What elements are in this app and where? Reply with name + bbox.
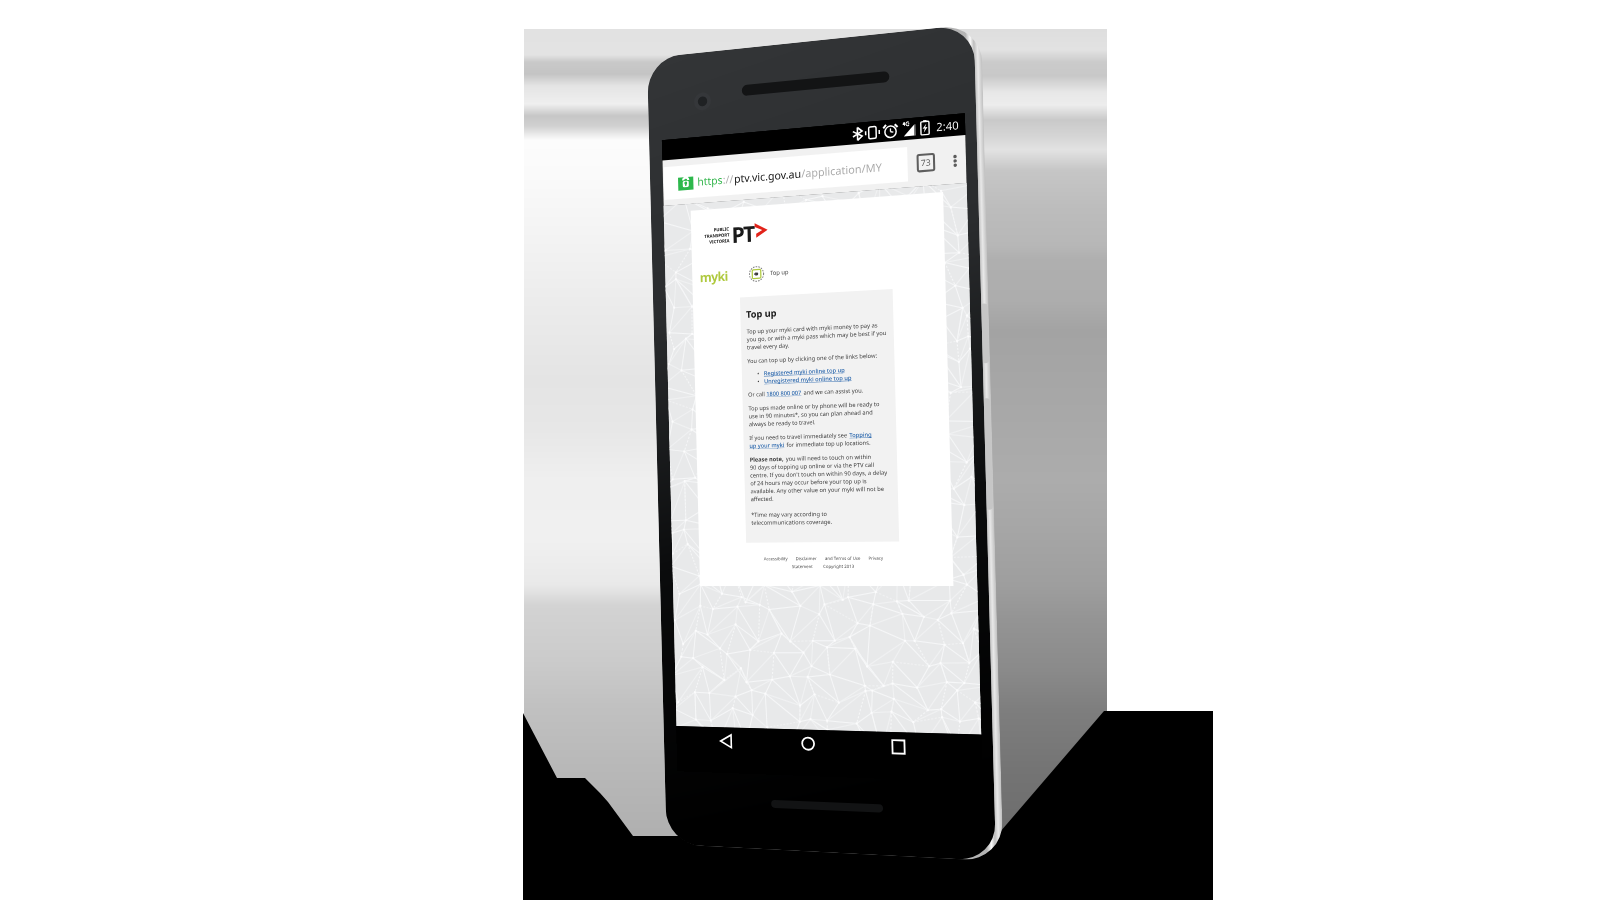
staticText: 73 bbox=[921, 156, 931, 169]
button[interactable]: https bbox=[663, 147, 908, 200]
button[interactable]: Recents bbox=[886, 732, 911, 757]
staticText: Please note, bbox=[750, 455, 784, 464]
staticText: *Time may vary according to bbox=[751, 510, 828, 519]
staticText: and we can assist you. bbox=[802, 386, 864, 397]
staticText: VICTORIA bbox=[709, 237, 730, 245]
button[interactable]: Registered myki online top up bbox=[764, 366, 846, 377]
staticText: Top up bbox=[770, 268, 789, 277]
button[interactable]: up your myki bbox=[749, 441, 785, 450]
button[interactable]: Topping bbox=[849, 431, 872, 439]
staticText: You can top up by clicking one of the li… bbox=[747, 352, 877, 365]
staticText: • bbox=[757, 377, 760, 385]
staticText: Top up bbox=[746, 306, 777, 321]
button[interactable]: Statement bbox=[792, 563, 813, 569]
staticText: telecommunications coverage. bbox=[751, 518, 833, 527]
staticText: PT bbox=[731, 218, 755, 249]
staticText: myki bbox=[700, 267, 728, 286]
staticText: 90 days of topping up online or via the … bbox=[750, 460, 892, 503]
button[interactable]: Accessibility bbox=[764, 555, 788, 561]
button[interactable]: Privacy bbox=[868, 555, 884, 561]
button[interactable]: More options bbox=[943, 142, 966, 179]
staticText: you will need to touch on within bbox=[784, 453, 872, 463]
button[interactable]: Unregistered myki online top up bbox=[764, 374, 852, 385]
button[interactable]: Home bbox=[796, 729, 820, 754]
staticText: • bbox=[757, 370, 760, 378]
button[interactable]: and Terms of Use bbox=[825, 555, 861, 561]
button[interactable]: Tabs bbox=[907, 144, 944, 181]
staticText: PUBLIC bbox=[713, 225, 730, 232]
staticText: for immediate top up locations. bbox=[785, 439, 872, 449]
staticText: TRANSPORT bbox=[704, 231, 730, 239]
staticText: Top up your myki card with myki money to… bbox=[746, 321, 888, 351]
staticText: /application/MY bbox=[801, 159, 882, 181]
staticText: Or call bbox=[748, 390, 766, 399]
staticText: Top ups made online or by phone will be … bbox=[748, 400, 890, 428]
staticText: If you need to travel immediately see bbox=[749, 431, 849, 442]
staticText: 2:40 bbox=[936, 117, 959, 134]
button[interactable]: Back bbox=[714, 727, 737, 751]
staticText: ptv.vic.gov.au bbox=[734, 166, 801, 186]
button[interactable]: Disclaimer bbox=[795, 555, 817, 561]
button[interactable]: Copyright 2013 bbox=[823, 563, 855, 569]
button[interactable]: 1800 800 007 bbox=[766, 389, 802, 398]
staticText: :// bbox=[723, 171, 734, 187]
staticText: https bbox=[697, 172, 723, 189]
